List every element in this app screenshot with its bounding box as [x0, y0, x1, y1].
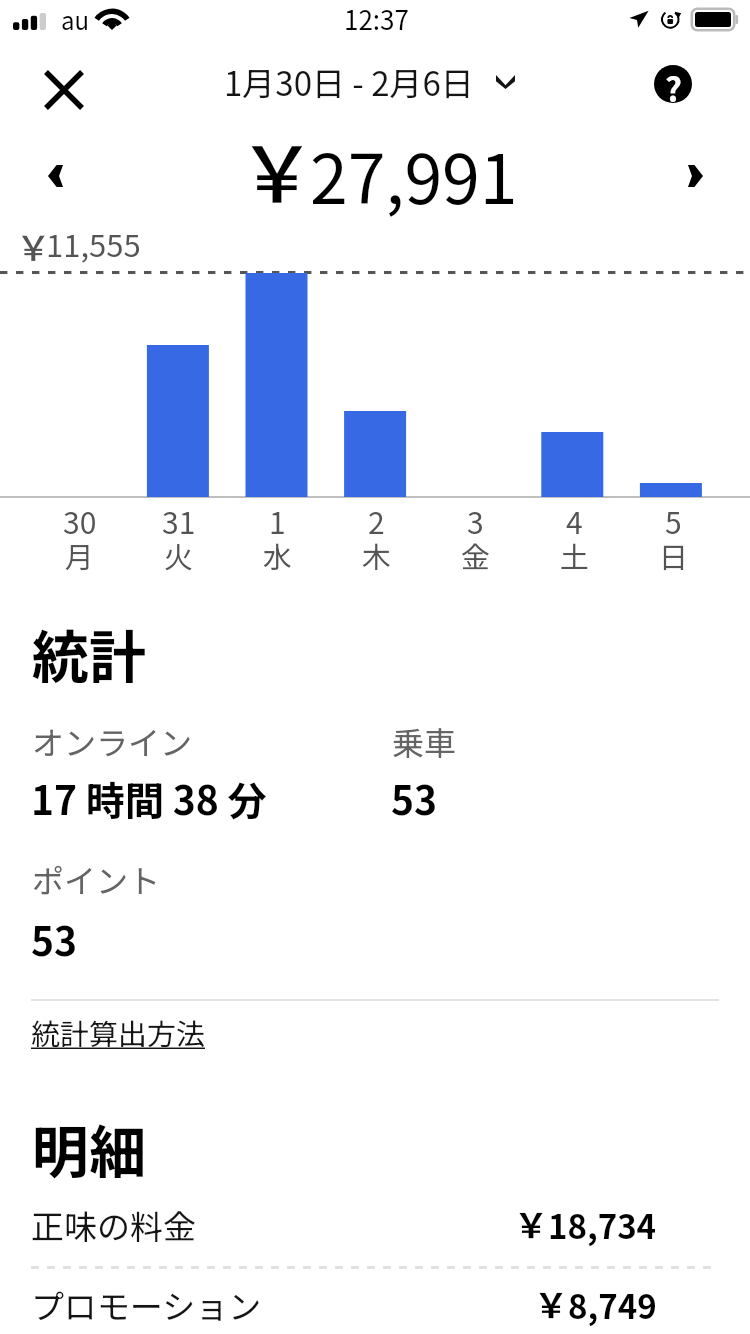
- staticText: 30: [63, 499, 97, 542]
- staticText: 11,555: [46, 221, 141, 266]
- staticText: 月: [65, 534, 95, 576]
- button[interactable]: 1月30日 - 2月6日: [224, 58, 515, 106]
- staticText: 3: [467, 499, 484, 542]
- staticText: 2: [368, 499, 385, 542]
- staticText: ?: [665, 64, 682, 102]
- staticText: 正味の料金: [31, 1201, 196, 1249]
- staticText: ￥: [238, 113, 317, 223]
- staticText: 53: [391, 770, 438, 826]
- staticText: 1: [269, 499, 286, 542]
- staticText: 金: [461, 534, 491, 576]
- staticText: 明細: [32, 1107, 146, 1190]
- staticText: 18,734: [548, 1201, 657, 1249]
- staticText: オンライン: [32, 718, 193, 764]
- staticText: 土: [560, 534, 590, 576]
- button[interactable]: Next week: [667, 148, 723, 204]
- staticText: 31: [162, 499, 196, 542]
- staticText: au: [61, 2, 90, 37]
- staticText: ￥: [514, 1199, 548, 1248]
- staticText: 木: [362, 534, 392, 576]
- staticText: 4: [566, 499, 583, 542]
- staticText: 火: [164, 534, 194, 576]
- button[interactable]: 統計算出方法: [31, 1011, 206, 1053]
- staticText: 統計: [32, 612, 146, 695]
- staticText: 5: [665, 499, 682, 542]
- staticText: 水: [263, 534, 293, 576]
- staticText: ￥: [534, 1279, 568, 1328]
- button[interactable]: 正味の料金: [31, 1194, 657, 1255]
- staticText: 統計算出方法: [31, 1011, 206, 1053]
- button[interactable]: プロモーション: [31, 1275, 657, 1334]
- button[interactable]: Close: [30, 57, 98, 123]
- button[interactable]: Previous week: [27, 148, 83, 204]
- staticText: 12:37: [344, 0, 409, 38]
- staticText: 8,749: [568, 1281, 657, 1329]
- staticText: 17 時間 38 分: [31, 770, 267, 826]
- staticText: ￥: [16, 220, 52, 271]
- staticText: 日: [659, 534, 689, 576]
- button[interactable]: Help: [639, 51, 707, 117]
- staticText: ポイント: [32, 856, 161, 902]
- staticText: 乗車: [392, 718, 457, 764]
- staticText: 53: [31, 911, 78, 967]
- staticText: プロモーション: [31, 1281, 262, 1329]
- staticText: 27,991: [310, 125, 518, 223]
- staticText: 1月30日 - 2月6日: [224, 58, 474, 106]
